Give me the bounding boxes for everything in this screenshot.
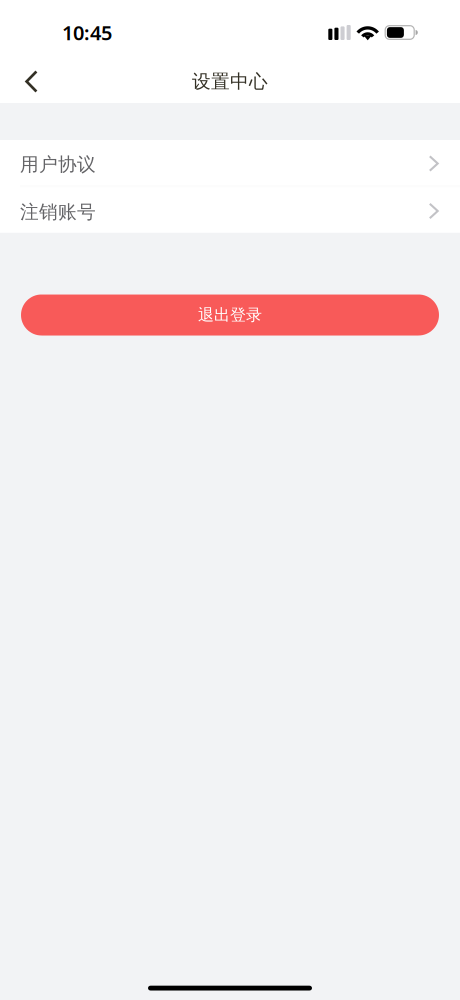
- button[interactable]: 退出登录: [21, 294, 439, 335]
- button[interactable]: 用户协议: [0, 140, 460, 185]
- staticText: 10:45: [62, 19, 112, 46]
- staticText: 退出登录: [198, 305, 262, 325]
- button[interactable]: Back: [0, 63, 52, 100]
- staticText: 设置中心: [192, 70, 268, 93]
- staticText: 注销账号: [20, 200, 96, 223]
- button[interactable]: 注销账号: [0, 187, 460, 232]
- staticText: 用户协议: [20, 153, 96, 176]
